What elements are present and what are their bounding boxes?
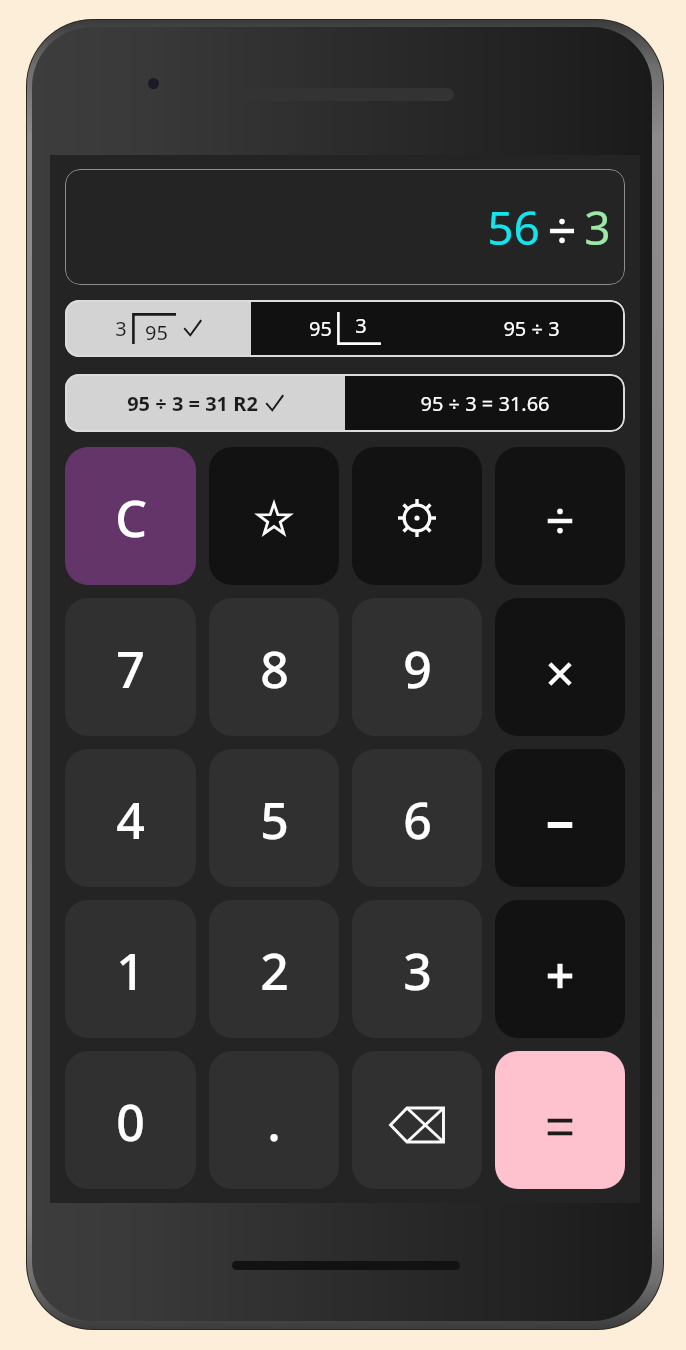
staticText: 95 <box>145 319 168 344</box>
staticText: 95 ÷ 3 = 31.66 <box>420 390 550 417</box>
staticText: . <box>267 1088 281 1156</box>
staticText: 0 <box>116 1088 145 1156</box>
button[interactable]: Add <box>495 900 625 1038</box>
button[interactable]: Equals <box>495 1051 625 1189</box>
button[interactable]: Settings <box>352 447 482 585</box>
button[interactable]: 8 <box>209 598 339 736</box>
staticText: 6 <box>403 786 432 854</box>
button[interactable]: Favourite <box>209 447 339 585</box>
button[interactable]: Backspace <box>352 1051 482 1189</box>
button[interactable]: Subtract <box>495 749 625 887</box>
staticText: 95 ÷ 3 = 31 R2 <box>127 390 258 417</box>
staticText: 9 <box>403 635 432 703</box>
staticText: 8 <box>260 635 289 703</box>
button[interactable]: 95 <box>251 300 438 357</box>
staticText: 95 ÷ 3 <box>503 315 560 342</box>
button[interactable]: 95 ÷ 3 = 31 R2 <box>65 374 345 432</box>
staticText: 95 <box>309 315 332 342</box>
button[interactable]: 6 <box>352 749 482 887</box>
staticText: 3 <box>355 312 367 337</box>
staticText: 3 <box>584 196 611 259</box>
button[interactable]: 95 ÷ 3 = 31.66 <box>345 374 625 432</box>
button[interactable]: 1 <box>65 900 196 1038</box>
staticText: 7 <box>116 635 145 703</box>
staticText: 3 <box>403 937 432 1005</box>
staticText: 1 <box>116 937 145 1005</box>
staticText: 5 <box>260 786 289 854</box>
button[interactable]: Divide <box>495 447 625 585</box>
button[interactable]: 0 <box>65 1051 196 1189</box>
staticText: 56 <box>487 196 540 259</box>
button[interactable]: 2 <box>209 900 339 1038</box>
button[interactable]: 5 <box>209 749 339 887</box>
button[interactable]: 4 <box>65 749 196 887</box>
button[interactable]: Multiply <box>495 598 625 736</box>
staticText: 3 <box>115 315 127 342</box>
button[interactable]: 9 <box>352 598 482 736</box>
button[interactable]: 95 ÷ 3 <box>438 300 625 357</box>
staticText: 4 <box>116 786 145 854</box>
button[interactable]: 3 <box>352 900 482 1038</box>
button[interactable]: 3 <box>65 300 251 357</box>
button[interactable]: . <box>209 1051 339 1189</box>
button[interactable]: 7 <box>65 598 196 736</box>
staticText: C <box>115 484 147 552</box>
button[interactable]: C <box>65 447 196 585</box>
staticText: 2 <box>260 937 289 1005</box>
